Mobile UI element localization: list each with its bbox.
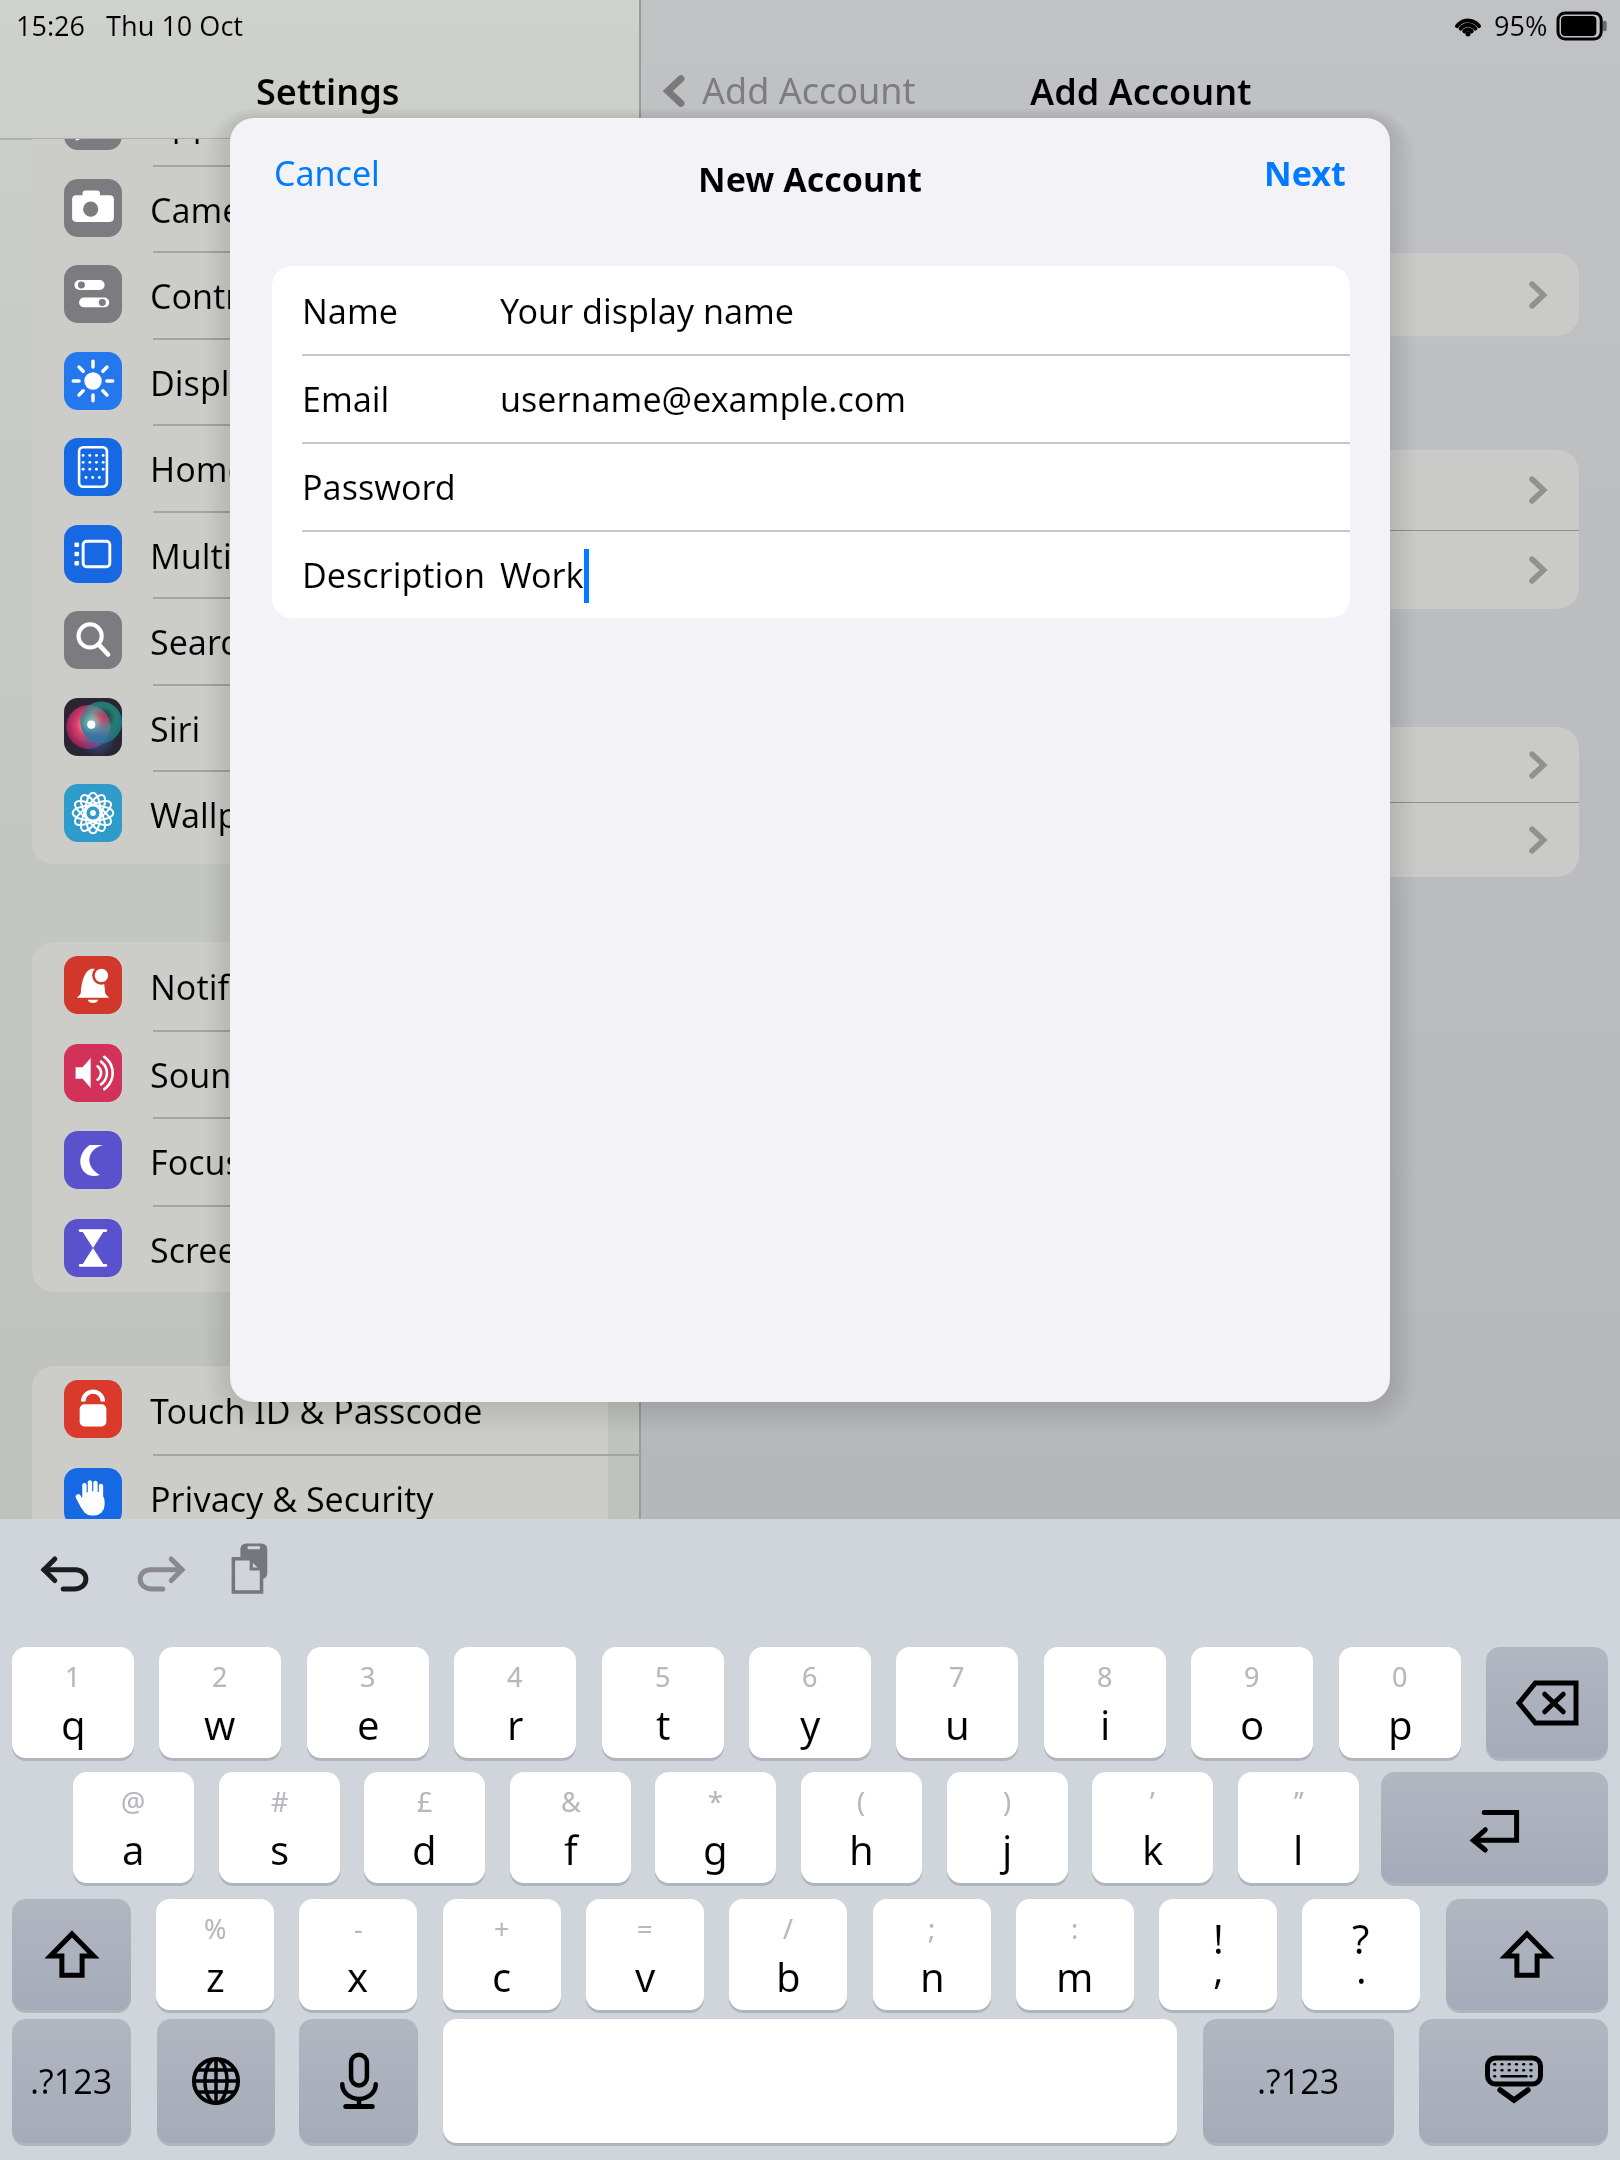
button[interactable]: Multitasking & Gestures — [32, 511, 608, 597]
button[interactable]: 9 — [1191, 1647, 1313, 1758]
staticText: b — [776, 1949, 801, 2003]
button[interactable]: & — [510, 1772, 631, 1883]
staticText: x — [347, 1949, 369, 2003]
button[interactable]: Search — [32, 597, 608, 683]
button[interactable]: 3 — [307, 1647, 429, 1758]
staticText: l — [1293, 1822, 1304, 1876]
staticText: Siri — [150, 706, 201, 752]
staticText: @ — [121, 1783, 146, 1820]
button[interactable]: .?123 — [1203, 2019, 1394, 2143]
button[interactable]: Focus — [32, 1117, 608, 1203]
button[interactable]: ! — [1159, 1899, 1277, 2010]
button[interactable]: Shift — [1446, 1899, 1608, 2010]
button[interactable]: 0 — [1339, 1647, 1461, 1758]
button[interactable]: # — [219, 1772, 340, 1883]
button[interactable]: Return — [1381, 1772, 1608, 1883]
staticText: 1 — [65, 1658, 81, 1695]
staticText: q — [61, 1697, 86, 1751]
button[interactable]: Backspace — [1486, 1647, 1608, 1758]
button[interactable]: Privacy & Security — [32, 1454, 608, 1519]
button[interactable]: Cancel — [260, 142, 394, 204]
staticText: 3 — [360, 1658, 376, 1695]
button[interactable]: Password — [272, 442, 1350, 530]
staticText: 6 — [802, 1658, 818, 1695]
staticText: Name — [302, 288, 398, 334]
button[interactable]: Switch keyboard — [157, 2019, 275, 2143]
button[interactable]: Camera — [32, 165, 608, 251]
button[interactable]: Email — [272, 354, 1350, 442]
button[interactable]: Next — [1250, 142, 1360, 204]
button[interactable]: Apple Pencil — [32, 139, 608, 164]
button[interactable]: 8 — [1044, 1647, 1166, 1758]
staticText: Sounds — [150, 1052, 269, 1098]
button[interactable]: Open settings detail — [700, 450, 1579, 530]
button[interactable]: ( — [801, 1772, 922, 1883]
button[interactable]: Open settings detail — [700, 727, 1579, 802]
staticText: : — [1071, 1910, 1079, 1947]
button[interactable]: Open settings detail — [700, 530, 1579, 609]
button[interactable]: : — [1016, 1899, 1134, 2010]
button[interactable]: Hide keyboard — [1419, 2019, 1608, 2143]
button[interactable]: = — [586, 1899, 704, 2010]
button[interactable]: .?123 — [12, 2019, 131, 2143]
button[interactable]: Home Screen & App Library — [32, 424, 608, 510]
button[interactable]: Name — [272, 266, 1350, 354]
button[interactable]: 6 — [749, 1647, 871, 1758]
button[interactable]: % — [156, 1899, 274, 2010]
button[interactable]: 2 — [159, 1647, 281, 1758]
button[interactable]: Notifications — [32, 942, 608, 1028]
button[interactable]: Control Center — [32, 251, 608, 337]
button[interactable]: ) — [947, 1772, 1068, 1883]
staticText: 7 — [949, 1658, 965, 1695]
button[interactable]: ’ — [1092, 1772, 1213, 1883]
button[interactable]: Redo — [128, 1541, 188, 1601]
staticText: Work — [500, 552, 584, 598]
button[interactable]: Shift — [12, 1899, 131, 2010]
button[interactable]: ” — [1238, 1772, 1359, 1883]
staticText: u — [945, 1697, 970, 1751]
staticText: 4 — [507, 1658, 523, 1695]
staticText: Multitasking & Gestures — [150, 533, 534, 579]
button[interactable]: ? — [1302, 1899, 1420, 2010]
button[interactable]: + — [443, 1899, 561, 2010]
staticText: 0 — [1392, 1658, 1408, 1695]
button[interactable]: - — [299, 1899, 417, 2010]
staticText: ) — [1003, 1783, 1012, 1820]
button[interactable]: Open settings detail — [700, 253, 1579, 336]
button[interactable]: Siri — [32, 684, 608, 770]
button[interactable]: ; — [873, 1899, 991, 2010]
staticText: 9 — [1244, 1658, 1260, 1695]
staticText: = — [637, 1910, 653, 1947]
staticText: New Account — [698, 156, 923, 202]
button[interactable]: £ — [364, 1772, 485, 1883]
button[interactable]: Wallpaper — [32, 770, 608, 856]
staticText: Apple Pencil — [150, 139, 345, 146]
staticText: Cancel — [274, 150, 380, 196]
button[interactable]: 7 — [896, 1647, 1018, 1758]
staticText: & — [561, 1783, 581, 1820]
button[interactable]: 1 — [12, 1647, 134, 1758]
button[interactable]: * — [655, 1772, 776, 1883]
button[interactable]: Touch ID & Passcode — [32, 1366, 608, 1452]
staticText: Notifications — [150, 964, 353, 1010]
button[interactable]: Description — [272, 530, 1350, 618]
button[interactable]: Undo — [38, 1541, 98, 1601]
staticText: i — [1100, 1697, 1111, 1751]
button[interactable]: Add Account — [654, 60, 922, 121]
button[interactable]: Dictation — [299, 2019, 418, 2143]
staticText: ( — [857, 1783, 866, 1820]
button[interactable]: Sounds — [32, 1030, 608, 1116]
staticText: Home Screen & App Library — [150, 446, 590, 492]
staticText: p — [1388, 1697, 1413, 1751]
button[interactable]: Screen Time — [32, 1205, 608, 1291]
button[interactable]: Paste — [218, 1537, 282, 1601]
button[interactable]: @ — [73, 1772, 194, 1883]
button[interactable]: Display & Brightness — [32, 338, 608, 424]
button[interactable]: Open settings detail — [700, 802, 1579, 877]
staticText: .?123 — [30, 2058, 113, 2104]
button[interactable]: 5 — [602, 1647, 724, 1758]
staticText: ’ — [1150, 1783, 1155, 1820]
button[interactable]: / — [729, 1899, 847, 2010]
button[interactable]: 4 — [454, 1647, 576, 1758]
